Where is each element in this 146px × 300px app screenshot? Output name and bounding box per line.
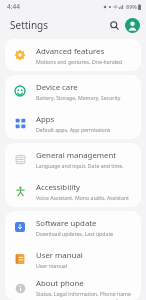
- staticText: User manual: [36, 262, 68, 269]
- staticText: Battery, Storage, Memory, Security: [36, 94, 121, 101]
- button[interactable]: Device care: [5, 75, 141, 107]
- staticText: About phone: [36, 278, 84, 289]
- button[interactable]: Software update: [5, 211, 141, 243]
- staticText: General management: [36, 150, 117, 161]
- staticText: User manual: [36, 250, 83, 261]
- button[interactable]: Accessibility: [5, 175, 141, 207]
- staticText: Device care: [36, 82, 78, 93]
- staticText: Advanced features: [36, 46, 105, 57]
- button[interactable]: General management: [5, 143, 141, 175]
- staticText: Voice Assistant, Mono audio, Assistant m…: [36, 194, 135, 201]
- staticText: Language and input, Date and time, Reset: [36, 162, 135, 169]
- button[interactable]: Apps: [5, 107, 141, 139]
- staticText: Settings: [10, 18, 49, 32]
- button[interactable]: Search: [106, 17, 122, 33]
- button[interactable]: Advanced features: [5, 39, 141, 71]
- staticText: 4:44: [7, 2, 20, 11]
- button[interactable]: Account: [125, 18, 140, 33]
- button[interactable]: About phone: [5, 275, 141, 300]
- staticText: Default apps, App permissions: [36, 126, 111, 133]
- staticText: Download updates, Last update: [36, 230, 114, 237]
- staticText: Software update: [36, 218, 97, 229]
- button[interactable]: User manual: [5, 243, 141, 275]
- staticText: Apps: [36, 114, 55, 125]
- staticText: Accessibility: [36, 182, 80, 193]
- staticText: Status, Legal information, Phone name: [36, 290, 131, 297]
- staticText: Motions and gestures, One-handed mode: [36, 58, 135, 65]
- staticText: 89%: [126, 3, 137, 10]
